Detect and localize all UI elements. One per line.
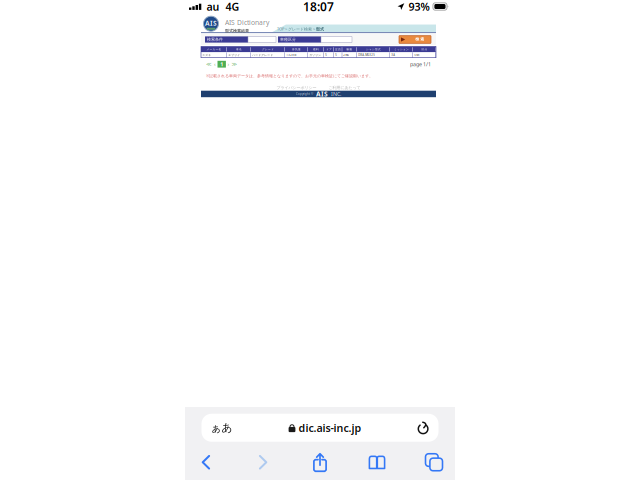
staticText: ご利用にあたって (328, 85, 360, 90)
staticText: ※記載される車両データは、参考情報となりますので、お手元の車検証にてご確認願いま… (206, 73, 373, 78)
staticText: 5MT (414, 53, 419, 57)
staticText: ≪ (206, 61, 212, 67)
staticText: 4G (225, 0, 239, 14)
staticText: › (227, 61, 229, 68)
staticText: Copyright © (296, 92, 313, 96)
button[interactable]: Share (313, 453, 327, 472)
staticText: 車種区分 (280, 37, 296, 42)
staticText: ミッション (394, 48, 409, 51)
staticText: TOP > グレード検索 > (277, 26, 316, 32)
staticText: ドア (326, 48, 332, 51)
staticText: 5 (335, 53, 337, 57)
staticText: 3A (391, 53, 395, 57)
staticText: 2WD (343, 53, 349, 57)
staticText: スズキ (202, 53, 211, 57)
staticText: 1328cc (286, 53, 296, 57)
staticText: 検 索 (415, 37, 424, 42)
staticText: 駆動 (346, 48, 352, 51)
staticText: 18:07 (303, 0, 334, 14)
staticText: AIS (205, 19, 217, 27)
staticText: AIS (316, 89, 328, 98)
staticText: 燃料 (313, 48, 319, 51)
button[interactable]: Bookmarks (368, 455, 386, 469)
staticText: 型式検索結果 (225, 28, 249, 33)
staticText: 排気量 (292, 48, 301, 51)
staticText: 車名 (236, 48, 242, 51)
staticText: プライバシーポリシー (276, 85, 316, 90)
button[interactable]: Back (201, 455, 210, 469)
staticText: グレード (262, 48, 274, 51)
staticText: ‹ (214, 61, 216, 68)
button[interactable]: Forward (258, 455, 267, 469)
staticText: ハードグレード (252, 53, 273, 57)
button[interactable]: Tabs (425, 454, 442, 471)
staticText: page 1/1 (410, 61, 431, 68)
staticText: 1 (220, 61, 223, 68)
staticText: エブリイ (228, 53, 240, 57)
staticText: dic.ais-inc.jp (298, 421, 361, 435)
staticText: ぁあ (210, 421, 232, 434)
staticText: ≫ (231, 61, 237, 67)
staticText: 型式 (316, 27, 324, 31)
button[interactable]: ぁあ (201, 414, 438, 442)
staticText: INC. (331, 90, 341, 97)
staticText: 検索条件 (207, 37, 223, 42)
staticText: ガソリン (309, 53, 321, 57)
staticText: 定員 (335, 48, 341, 51)
staticText: AIS Dictionary (225, 18, 269, 27)
staticText: メーカー名 (206, 48, 221, 51)
staticText: 区分 (421, 48, 427, 51)
staticText: シャシ型式 (366, 48, 381, 51)
staticText: 5 (325, 53, 327, 57)
staticText: 93% (408, 0, 429, 14)
staticText: DBA-MG32S (358, 53, 374, 57)
staticText: au (206, 0, 219, 14)
